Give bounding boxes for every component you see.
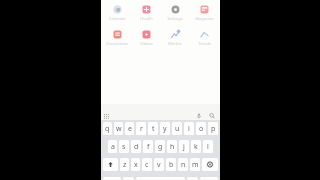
button[interactable]: a — [108, 140, 117, 153]
button[interactable]: Symbols — [104, 114, 109, 119]
staticText: Settings — [167, 16, 183, 21]
staticText: p — [211, 124, 216, 134]
button[interactable]: Videos — [133, 30, 159, 46]
button[interactable]: y — [160, 122, 170, 135]
button[interactable]: Trends — [191, 30, 217, 46]
button[interactable]: Documents — [104, 30, 130, 46]
button[interactable]: z — [120, 158, 129, 171]
button[interactable]: e — [125, 122, 134, 135]
staticText: d — [134, 142, 139, 152]
staticText: Documents — [106, 41, 128, 46]
staticText: l — [207, 142, 209, 152]
staticText: s — [122, 142, 126, 152]
button[interactable]: v — [154, 158, 164, 171]
button[interactable]: n — [178, 158, 188, 171]
button[interactable] — [187, 177, 198, 180]
staticText: u — [175, 124, 180, 134]
staticText: o — [199, 124, 204, 134]
button[interactable]: l — [203, 140, 213, 153]
staticText: v — [157, 160, 161, 170]
staticText: y — [163, 124, 167, 134]
button[interactable]: u — [172, 122, 182, 135]
button[interactable]: s — [119, 140, 129, 153]
staticText: q — [105, 124, 110, 134]
staticText: Magazine — [195, 16, 214, 21]
button[interactable]: x — [131, 158, 140, 171]
staticText: Videos — [140, 41, 153, 46]
button[interactable]: w — [114, 122, 123, 135]
staticText: Trends — [198, 41, 211, 46]
button[interactable]: t — [148, 122, 158, 135]
button[interactable]: d — [131, 140, 141, 153]
button[interactable]: Settings — [162, 5, 188, 21]
button[interactable]: Search — [209, 113, 215, 119]
button[interactable]: Magazine — [191, 5, 217, 21]
button[interactable]: b — [166, 158, 176, 171]
button[interactable]: Market — [162, 30, 188, 46]
staticText: f — [147, 142, 150, 152]
staticText: k — [194, 142, 198, 152]
button[interactable]: p — [208, 122, 218, 135]
button[interactable]: f — [143, 140, 153, 153]
staticText: z — [123, 160, 127, 170]
button[interactable]: k — [191, 140, 201, 153]
staticText: w — [116, 124, 122, 134]
staticText: x — [134, 160, 138, 170]
staticText: h — [170, 142, 175, 152]
button[interactable]: r — [136, 122, 146, 135]
staticText: Market — [168, 41, 182, 46]
button[interactable] — [103, 177, 121, 180]
button[interactable]: q — [103, 122, 112, 135]
button[interactable]: o — [196, 122, 206, 135]
staticText: n — [181, 160, 186, 170]
button[interactable]: g — [155, 140, 165, 153]
staticText: b — [169, 160, 174, 170]
staticText: r — [140, 124, 143, 134]
button[interactable]: i — [184, 122, 194, 135]
button[interactable]: h — [167, 140, 177, 153]
button[interactable]: Backspace — [202, 158, 218, 171]
staticText: e — [128, 124, 132, 134]
staticText: j — [183, 142, 185, 152]
staticText: a — [111, 142, 115, 152]
button[interactable]: c — [142, 158, 152, 171]
button[interactable]: Calendar — [104, 5, 130, 21]
staticText: Calendar — [109, 16, 126, 21]
staticText: g — [158, 142, 163, 152]
staticText: t — [152, 124, 155, 134]
button[interactable]: m — [190, 158, 200, 171]
button[interactable]: Voice input — [196, 113, 202, 119]
staticText: Health — [140, 16, 153, 21]
button[interactable]: j — [179, 140, 189, 153]
button[interactable]: Health — [133, 5, 159, 21]
staticText: c — [145, 160, 149, 170]
staticText: i — [188, 124, 190, 134]
button[interactable]: Shift — [103, 158, 118, 171]
button[interactable] — [200, 177, 218, 180]
staticText: m — [192, 160, 199, 170]
button[interactable] — [123, 177, 134, 180]
